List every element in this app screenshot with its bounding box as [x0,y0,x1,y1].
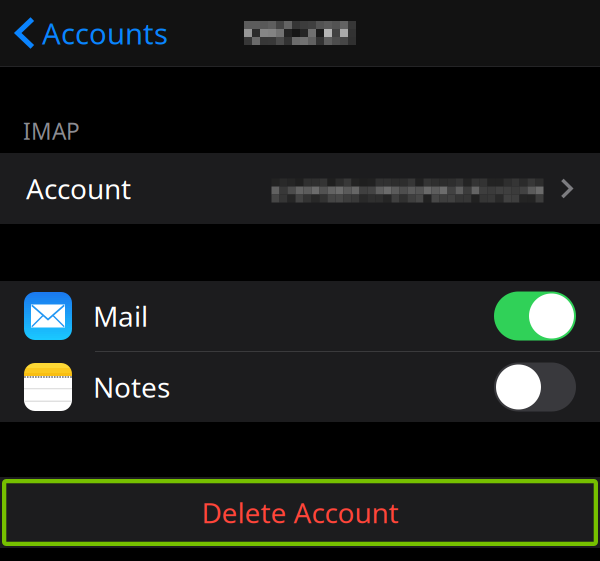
button[interactable]: Delete Account [0,477,600,548]
staticText: Account [26,170,131,207]
staticText: Notes [93,368,170,406]
staticText: Delete Account [201,494,398,531]
staticText: IMAP [23,116,80,146]
button[interactable]: Notes, off [494,362,576,411]
button[interactable]: Mail, on [494,291,576,340]
button[interactable]: Accounts [0,0,180,66]
button[interactable]: Account [0,153,600,224]
staticText: Accounts [42,13,168,52]
staticText: Mail [93,297,148,335]
